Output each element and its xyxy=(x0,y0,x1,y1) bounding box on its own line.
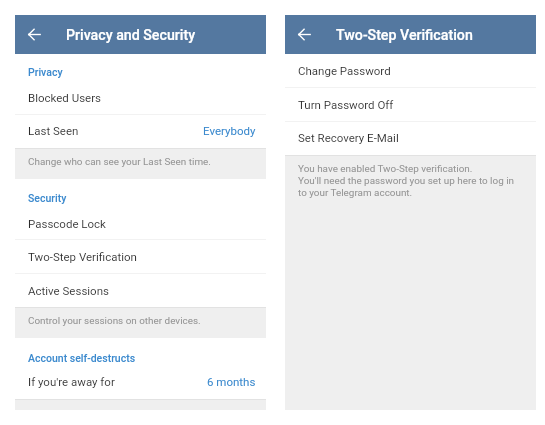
button[interactable]: Turn Password Off xyxy=(285,87,536,121)
staticText: Blocked Users xyxy=(28,91,102,104)
staticText: Change who can see your Last Seen time. xyxy=(28,156,211,168)
staticText: Two-Step Verification xyxy=(28,250,137,263)
button[interactable]: Last Seen xyxy=(15,114,266,148)
button[interactable]: Blocked Users xyxy=(15,87,266,114)
staticText: to your Telegram account. xyxy=(298,187,413,199)
button[interactable]: Back xyxy=(291,21,318,48)
staticText: Control your sessions on other devices. xyxy=(28,315,201,327)
staticText: Change Password xyxy=(298,64,391,77)
button[interactable]: Change Password xyxy=(285,54,536,87)
staticText: Account self-destructs xyxy=(28,352,136,364)
staticText: You'll need the password you set up here… xyxy=(298,175,515,187)
staticText: Passcode Lock xyxy=(28,217,106,230)
staticText: If you're away for xyxy=(28,375,115,388)
staticText: Everybody xyxy=(203,124,256,137)
button[interactable]: If you're away for xyxy=(15,373,266,399)
staticText: Active Sessions xyxy=(28,284,109,297)
staticText: Security xyxy=(28,192,67,204)
button[interactable]: Two-Step Verification xyxy=(15,239,266,273)
staticText: Set Recovery E-Mail xyxy=(298,131,399,144)
staticText: Last Seen xyxy=(28,124,79,137)
button[interactable]: Passcode Lock xyxy=(15,214,266,239)
staticText: You have enabled Two-Step verification. xyxy=(298,163,473,175)
staticText: Two-Step Verification xyxy=(336,27,473,44)
button[interactable]: Active Sessions xyxy=(15,273,266,307)
staticText: Privacy and Security xyxy=(66,27,196,44)
button[interactable]: Set Recovery E-Mail xyxy=(285,121,536,155)
staticText: Turn Password Off xyxy=(298,98,394,111)
staticText: Privacy xyxy=(28,66,63,78)
button[interactable]: Back xyxy=(21,21,48,48)
staticText: 6 months xyxy=(207,375,256,388)
